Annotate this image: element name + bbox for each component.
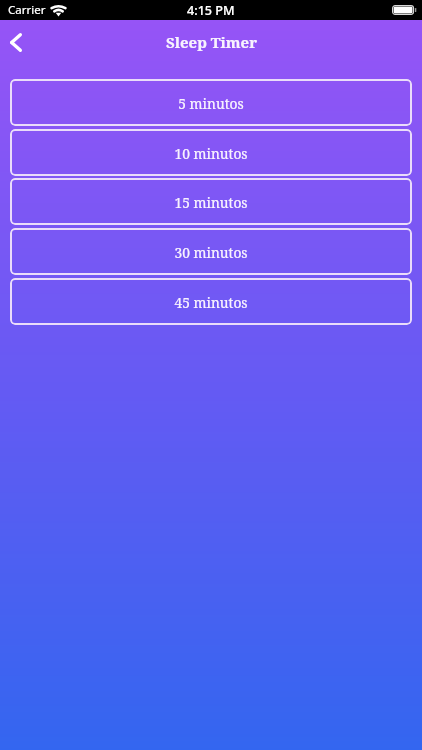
button[interactable]: Back	[0, 21, 33, 65]
staticText: 5 minutos	[178, 94, 244, 113]
button[interactable]: 30 minutos	[10, 228, 412, 275]
staticText: 45 minutos	[174, 293, 248, 312]
button[interactable]: 5 minutos	[10, 79, 412, 126]
staticText: 15 minutos	[174, 193, 248, 212]
staticText: 10 minutos	[174, 144, 248, 163]
staticText: Sleep Timer	[166, 32, 257, 52]
staticText: 30 minutos	[174, 243, 248, 262]
staticText: Carrier	[8, 2, 46, 18]
button[interactable]: 15 minutos	[10, 178, 412, 225]
button[interactable]: 10 minutos	[10, 129, 412, 176]
staticText: 4:15 PM	[187, 2, 235, 19]
button[interactable]: 45 minutos	[10, 278, 412, 325]
